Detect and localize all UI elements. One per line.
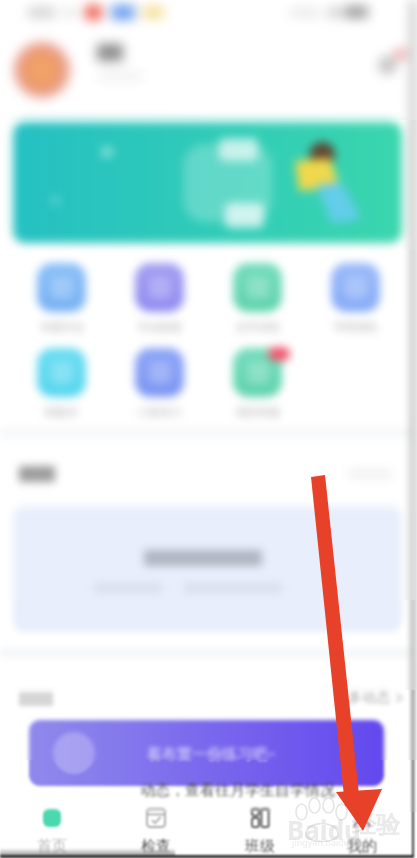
button[interactable]: 学情报告 — [321, 263, 389, 335]
button[interactable]: 着布置一份练习吧~ — [29, 720, 384, 786]
button[interactable]: 学情报告 — [321, 263, 389, 335]
button[interactable]: 我的 — [322, 800, 402, 858]
button[interactable]: Avatar — [14, 42, 70, 98]
button[interactable]: Scan code — [374, 48, 404, 78]
button[interactable]: 作业检查 — [125, 263, 193, 335]
button[interactable]: 着布置一份练习吧~ — [29, 720, 384, 786]
button[interactable]: 错题本 — [27, 348, 95, 420]
button[interactable]: 检查 — [116, 800, 196, 858]
button[interactable]: 检查 — [116, 800, 196, 858]
button[interactable]: 口算练习 — [125, 348, 193, 420]
button[interactable]: 更多动态 — [334, 688, 406, 708]
button[interactable]: 错题本 — [27, 348, 95, 420]
button[interactable]: 学情报告 — [321, 263, 389, 335]
button[interactable]: 错题本 — [27, 348, 95, 420]
button[interactable]: 我的班级 — [223, 348, 291, 420]
button[interactable]: 口算练习 — [125, 348, 193, 420]
button[interactable]: 错题本 — [27, 348, 95, 420]
button[interactable]: 自学训练 — [223, 263, 291, 335]
button[interactable]: Avatar — [14, 42, 70, 98]
button[interactable]: 作业检查 — [125, 263, 193, 335]
button[interactable]: 我的班级 — [223, 348, 291, 420]
button[interactable]: 我的 — [322, 800, 402, 858]
button[interactable]: 布置作业 — [27, 263, 95, 335]
button[interactable]: 首页 — [12, 800, 92, 858]
button[interactable]: 错题本 — [27, 348, 95, 420]
button[interactable]: Avatar — [14, 42, 70, 98]
button[interactable]: 自学训练 — [223, 263, 291, 335]
button[interactable]: 首页 — [12, 800, 92, 858]
button[interactable]: 作业检查 — [125, 263, 193, 335]
button[interactable]: 更多动态 — [334, 688, 406, 708]
button[interactable]: 作业检查 — [125, 263, 193, 335]
button[interactable]: 口算练习 — [125, 348, 193, 420]
button[interactable]: Scan code — [374, 48, 404, 78]
button[interactable]: 更多动态 — [334, 688, 406, 708]
button[interactable]: 更多动态 — [334, 688, 406, 708]
button[interactable] — [13, 122, 402, 243]
button[interactable] — [13, 122, 402, 243]
button[interactable]: 检查 — [116, 800, 196, 858]
button[interactable]: 我的班级 — [223, 348, 291, 420]
button[interactable]: Avatar — [14, 42, 70, 98]
button[interactable] — [13, 506, 402, 632]
button[interactable]: 布置作业 — [27, 263, 95, 335]
button[interactable]: Avatar — [14, 42, 70, 98]
button[interactable] — [13, 122, 402, 243]
button[interactable]: 班级 — [220, 800, 300, 858]
button[interactable]: Avatar — [14, 42, 70, 98]
button[interactable] — [13, 506, 402, 632]
button[interactable]: 班级 — [220, 800, 300, 858]
button[interactable]: 自学训练 — [223, 263, 291, 335]
button[interactable]: 口算练习 — [125, 348, 193, 420]
button[interactable]: 错题本 — [27, 348, 95, 420]
button[interactable]: 班级 — [220, 800, 300, 858]
button[interactable]: 首页 — [12, 800, 92, 858]
button[interactable]: 学情报告 — [321, 263, 389, 335]
button[interactable]: 检查 — [116, 800, 196, 858]
button[interactable]: 布置作业 — [27, 263, 95, 335]
button[interactable]: 着布置一份练习吧~ — [29, 720, 384, 786]
button[interactable] — [13, 506, 402, 632]
button[interactable]: 我的 — [322, 800, 402, 858]
button[interactable]: 布置作业 — [27, 263, 95, 335]
button[interactable]: 我的班级 — [223, 348, 291, 420]
button[interactable] — [13, 506, 402, 632]
button[interactable]: Avatar — [14, 42, 70, 98]
button[interactable] — [13, 122, 402, 243]
button[interactable] — [13, 506, 402, 632]
button[interactable]: 更多动态 — [334, 688, 406, 708]
button[interactable]: Scan code — [374, 48, 404, 78]
button[interactable]: 我的班级 — [223, 348, 291, 420]
button[interactable]: 我的 — [322, 800, 402, 858]
button[interactable]: Scan code — [374, 48, 404, 78]
button[interactable]: Scan code — [374, 48, 404, 78]
button[interactable] — [13, 506, 402, 632]
button[interactable] — [13, 122, 402, 243]
button[interactable]: 口算练习 — [125, 348, 193, 420]
button[interactable]: 着布置一份练习吧~ — [29, 720, 384, 786]
button[interactable]: Scan code — [374, 48, 404, 78]
button[interactable]: 我的 — [322, 800, 402, 858]
button[interactable]: 班级 — [220, 800, 300, 858]
button[interactable]: 检查 — [116, 800, 196, 858]
button[interactable]: 班级 — [220, 800, 300, 858]
button[interactable]: 首页 — [12, 800, 92, 858]
button[interactable] — [13, 506, 402, 632]
button[interactable]: 布置作业 — [27, 263, 95, 335]
button[interactable]: 着布置一份练习吧~ — [29, 720, 384, 786]
button[interactable]: 作业检查 — [125, 263, 193, 335]
button[interactable]: 班级 — [220, 800, 300, 858]
button[interactable]: 我的班级 — [223, 348, 291, 420]
button[interactable]: 着布置一份练习吧~ — [29, 720, 384, 786]
button[interactable]: 学情报告 — [321, 263, 389, 335]
button[interactable]: 自学训练 — [223, 263, 291, 335]
button[interactable]: 口算练习 — [125, 348, 193, 420]
button[interactable]: 口算练习 — [125, 348, 193, 420]
button[interactable]: 检查 — [116, 800, 196, 858]
button[interactable]: 布置作业 — [27, 263, 95, 335]
button[interactable]: 学情报告 — [321, 263, 389, 335]
button[interactable]: Scan code — [374, 48, 404, 78]
button[interactable]: 我的班级 — [223, 348, 291, 420]
button[interactable]: 首页 — [12, 800, 92, 858]
